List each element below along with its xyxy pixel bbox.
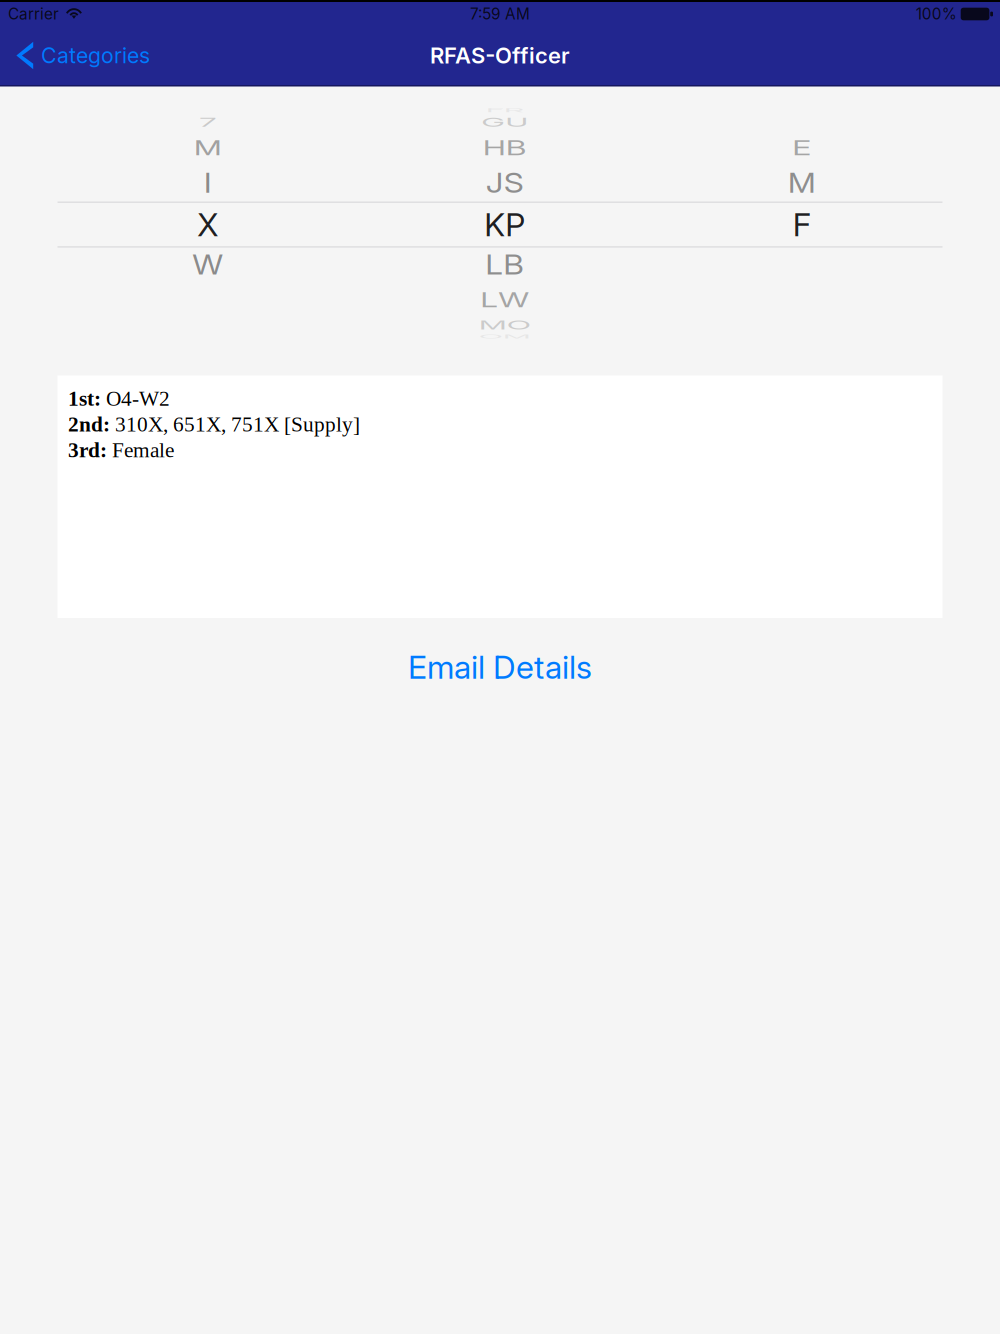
button[interactable]: AFSC, KP [357,203,652,247]
staticText: Email Details [408,648,592,686]
staticText: 7:59 AM [470,5,530,23]
staticText: LB [485,245,524,284]
staticText: 100% [916,5,957,23]
staticText: Carrier [8,5,59,23]
staticText: W [192,245,223,284]
button[interactable]: Grade, X [60,203,355,247]
staticText: 1st: O4-W2 [68,387,170,410]
staticText: HB [483,128,527,167]
staticText: MO [479,306,531,344]
button[interactable]: Gender, F [654,203,949,247]
staticText: FR [486,91,524,130]
staticText: LW [480,280,529,319]
staticText: GU [481,103,528,142]
staticText: 2nd: 310X, 651X, 751X [Supply] [68,413,360,436]
button[interactable]: Categories [0,26,164,85]
button[interactable]: Email Details [0,643,1000,691]
staticText: I [204,163,212,202]
staticText: OM [479,317,531,356]
staticText: M [788,163,816,202]
staticText: E [792,128,811,167]
staticText: 7 [199,103,216,142]
staticText: 3rd: Female [68,439,174,462]
staticText: M [194,128,222,167]
staticText: RFAS-Officer [430,42,570,69]
staticText: KP [484,205,525,244]
staticText: X [197,205,218,244]
staticText: JS [486,163,524,202]
staticText: F [793,205,811,244]
staticText: Categories [41,43,150,68]
